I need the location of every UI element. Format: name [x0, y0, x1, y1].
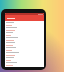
- button[interactable]: [5, 15, 44, 21]
- button[interactable]: [5, 36, 44, 41]
- button[interactable]: [5, 46, 44, 51]
- button[interactable]: [5, 21, 44, 26]
- button[interactable]: [5, 61, 44, 66]
- button[interactable]: [5, 41, 44, 46]
- button[interactable]: [5, 56, 44, 61]
- button[interactable]: [5, 31, 44, 36]
- button[interactable]: [5, 51, 44, 56]
- button[interactable]: [5, 26, 44, 31]
